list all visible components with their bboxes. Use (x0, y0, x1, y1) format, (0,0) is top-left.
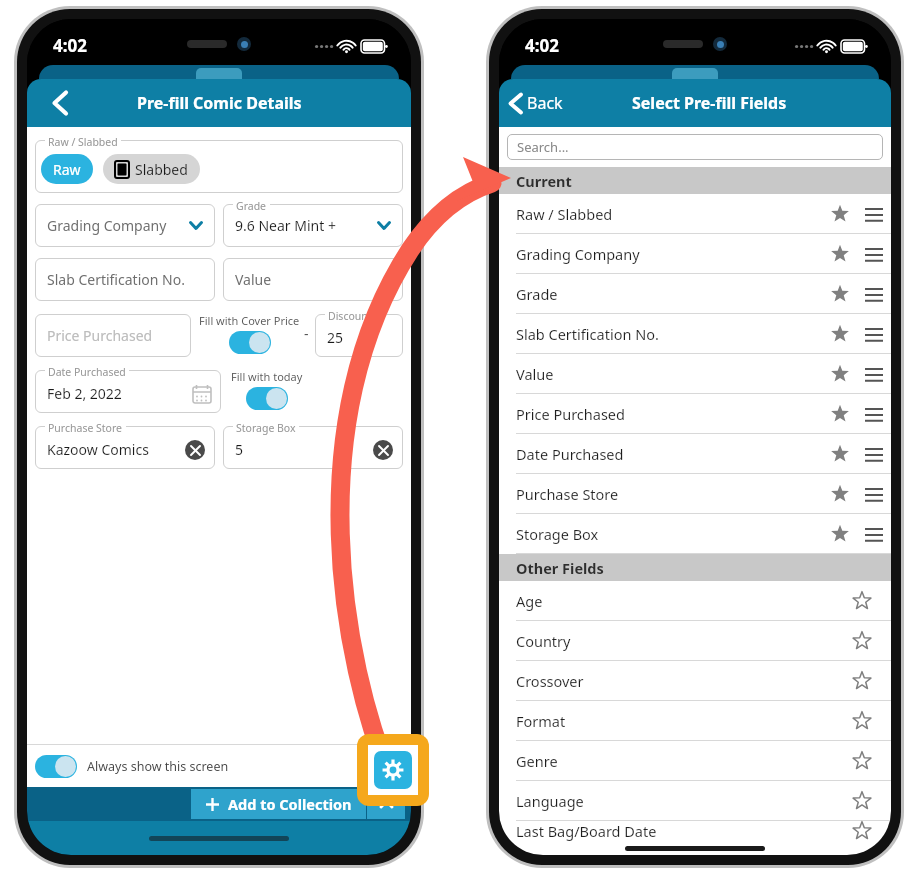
staticText: Current (516, 171, 572, 191)
button[interactable]: Genre (499, 741, 891, 780)
staticText: Add to Collection (228, 794, 352, 814)
staticText: Always show this screen (87, 758, 229, 775)
staticText: Raw (53, 160, 81, 179)
staticText: Search... (517, 138, 569, 156)
button[interactable]: Last Bag/Board Date (499, 821, 891, 841)
button[interactable]: Favorite (823, 397, 857, 431)
button[interactable]: Grading Company (499, 234, 891, 273)
button[interactable]: Reorder (857, 237, 891, 271)
button[interactable]: Value (499, 354, 891, 393)
staticText: Grading Company (47, 216, 189, 235)
button[interactable]: Favorite (845, 624, 879, 658)
button[interactable]: Clear (373, 440, 393, 460)
staticText: Language (516, 791, 845, 811)
staticText: Last Bag/Board Date (516, 821, 845, 841)
staticText: Pre-fill Comic Details (137, 92, 302, 114)
button[interactable]: Language (499, 781, 891, 820)
button[interactable]: Reorder (857, 357, 891, 391)
button[interactable]: Favorite (823, 357, 857, 391)
staticText: Genre (516, 751, 845, 771)
button[interactable]: Back (37, 81, 81, 125)
button[interactable]: Crossover (499, 661, 891, 700)
button[interactable]: Favorite (845, 784, 879, 818)
staticText: Price Purchased (47, 326, 153, 345)
button[interactable]: Slab Certification No. (499, 314, 891, 353)
staticText: Fill with Cover Price (199, 313, 300, 328)
button[interactable]: Format (499, 701, 891, 740)
staticText: Select Pre-fill Fields (632, 92, 787, 114)
button[interactable]: Favorite (823, 317, 857, 351)
button[interactable]: Reorder (857, 437, 891, 471)
staticText: Grade (236, 199, 267, 213)
button[interactable]: Raw / Slabbed (499, 194, 891, 233)
button[interactable]: Favorite (845, 664, 879, 698)
button[interactable]: Favorite (845, 584, 879, 618)
button[interactable]: Price Purchased (499, 394, 891, 433)
staticText: 5 (235, 440, 373, 459)
staticText: Raw / Slabbed (48, 135, 118, 149)
staticText: Discount % (328, 309, 384, 323)
staticText: 25 (327, 328, 344, 347)
staticText: Kazoow Comics (47, 440, 185, 459)
staticText: Grade (516, 284, 823, 304)
button[interactable]: Add to Collection (205, 789, 352, 819)
staticText: Purchase Store (516, 484, 823, 504)
staticText: Format (516, 711, 845, 731)
staticText: Date Purchased (516, 444, 823, 464)
button[interactable]: Favorite (823, 197, 857, 231)
button[interactable]: Toggle (35, 755, 77, 778)
staticText: Grading Company (516, 244, 823, 264)
button[interactable]: Toggle (246, 387, 288, 410)
button[interactable]: Reorder (857, 197, 891, 231)
button[interactable]: Favorite (823, 437, 857, 471)
staticText: Storage Box (236, 421, 296, 435)
staticText: Date Purchased (48, 365, 126, 379)
staticText: Purchase Store (48, 421, 123, 435)
staticText: Fill with today (231, 369, 303, 384)
button[interactable]: Search... (507, 134, 883, 160)
staticText: Age (516, 591, 845, 611)
button[interactable]: Reorder (857, 477, 891, 511)
staticText: Slab Certification No. (47, 270, 185, 289)
button[interactable]: Favorite (845, 704, 879, 738)
button[interactable]: Age (499, 581, 891, 620)
staticText: 9.6 Near Mint + (235, 216, 377, 235)
button[interactable]: More (367, 789, 405, 819)
button[interactable]: Storage Box (499, 514, 891, 553)
staticText: 4:02 (525, 34, 559, 57)
button[interactable]: Date Purchased (499, 434, 891, 473)
button[interactable]: Settings (368, 745, 418, 795)
staticText: - (304, 324, 309, 343)
staticText: 4:02 (53, 34, 87, 57)
button[interactable]: Favorite (823, 477, 857, 511)
button[interactable]: Country (499, 621, 891, 660)
staticText: Crossover (516, 671, 845, 691)
button[interactable]: Toggle (229, 331, 271, 354)
button[interactable]: Reorder (857, 517, 891, 551)
button[interactable]: Favorite (823, 517, 857, 551)
staticText: Slab Certification No. (516, 324, 823, 344)
button[interactable]: Slabbed (103, 154, 200, 184)
staticText: Raw / Slabbed (516, 204, 823, 224)
button[interactable]: Reorder (857, 317, 891, 351)
staticText: Other Fields (516, 558, 604, 578)
button[interactable]: Back (509, 81, 563, 125)
button[interactable]: Favorite (823, 277, 857, 311)
button[interactable]: Purchase Store (499, 474, 891, 513)
staticText: Country (516, 631, 845, 651)
staticText: Value (516, 364, 823, 384)
staticText: Value (235, 270, 272, 289)
staticText: Feb 2, 2022 (47, 384, 193, 403)
button[interactable]: Favorite (845, 744, 879, 778)
button[interactable]: Favorite (823, 237, 857, 271)
button[interactable]: Raw (41, 154, 93, 184)
button[interactable]: Reorder (857, 397, 891, 431)
button[interactable]: Favorite (845, 821, 879, 841)
button[interactable]: Grade (499, 274, 891, 313)
button[interactable]: Reorder (857, 277, 891, 311)
staticText: Back (527, 92, 563, 114)
staticText: Slabbed (135, 160, 188, 179)
button[interactable]: Toggle (27, 745, 411, 787)
staticText: Price Purchased (516, 404, 823, 424)
button[interactable]: Clear (185, 440, 205, 460)
